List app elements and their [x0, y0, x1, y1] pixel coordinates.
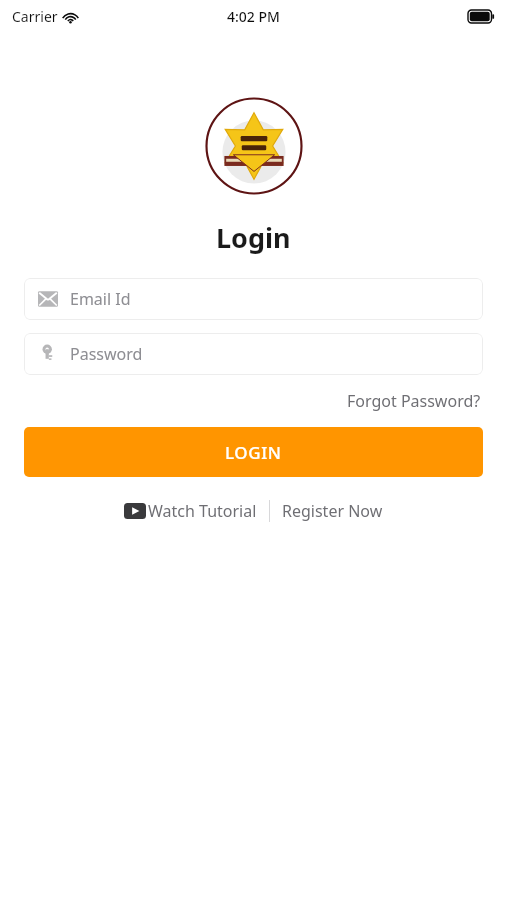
button[interactable]: Forgot Password?	[345, 387, 483, 415]
staticText: Register Now	[282, 500, 383, 522]
staticText: Carrier	[12, 7, 58, 26]
button[interactable]: Watch Tutorial	[121, 497, 260, 525]
staticText: 4:02 PM	[227, 7, 280, 26]
button[interactable]: Register Now	[279, 497, 386, 525]
staticText: Watch Tutorial	[148, 500, 257, 522]
staticText: Login	[216, 219, 291, 256]
button[interactable]: Password	[24, 333, 483, 375]
button[interactable]: Email Id	[24, 278, 483, 320]
staticText: Email Id	[70, 288, 131, 310]
staticText: Password	[70, 343, 143, 365]
staticText: Forgot Password?	[347, 390, 481, 412]
button[interactable]: LOGIN	[24, 427, 483, 477]
staticText: LOGIN	[225, 441, 282, 464]
